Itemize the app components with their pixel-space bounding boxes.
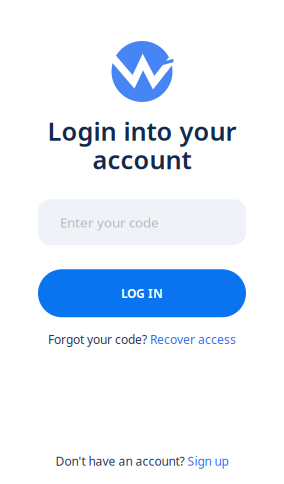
button[interactable]: Sign up: [187, 453, 228, 469]
staticText: account: [92, 143, 191, 176]
button[interactable]: Recover access: [150, 331, 236, 347]
staticText: Forgot your code?: [48, 331, 147, 347]
staticText: Recover access: [150, 331, 236, 347]
staticText: Enter your code: [60, 213, 159, 231]
staticText: LOG IN: [121, 285, 163, 301]
staticText: Sign up: [187, 453, 228, 469]
button[interactable]: LOG IN: [38, 269, 246, 317]
staticText: Don't have an account?: [55, 453, 184, 469]
staticText: Login into your: [47, 114, 236, 148]
